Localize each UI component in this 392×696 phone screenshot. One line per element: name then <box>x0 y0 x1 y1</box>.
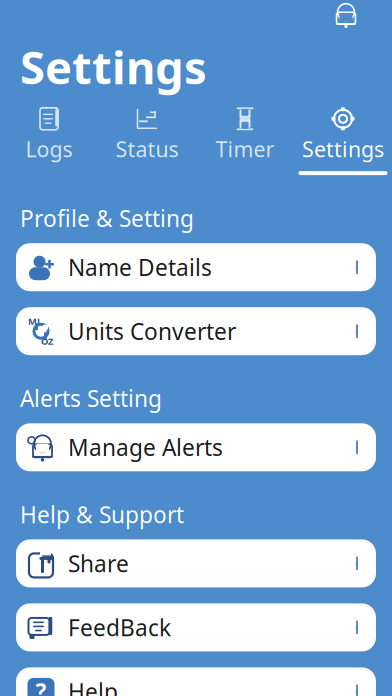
staticText: Timer <box>215 135 274 163</box>
button[interactable]: Settings <box>294 105 392 175</box>
button[interactable]: Manage Alerts <box>16 423 376 471</box>
staticText: ? <box>35 676 46 696</box>
button[interactable]: Timer <box>196 105 294 175</box>
button[interactable]: Notifications <box>326 0 366 34</box>
staticText: FeedBack <box>68 612 171 642</box>
staticText: Units Converter <box>68 316 236 346</box>
staticText: Help <box>68 676 118 696</box>
staticText: Logs <box>25 135 72 163</box>
staticText: Settings <box>20 37 207 97</box>
staticText: Settings <box>302 135 384 163</box>
staticText: Share <box>68 548 129 578</box>
button[interactable]: Logs <box>0 105 98 175</box>
staticText: Profile & Setting <box>20 203 194 233</box>
button[interactable]: Share <box>16 539 376 587</box>
button[interactable]: ? <box>16 667 376 696</box>
staticText: Manage Alerts <box>68 432 223 462</box>
staticText: Status <box>115 135 178 163</box>
button[interactable]: Name Details <box>16 243 376 291</box>
staticText: ML <box>28 315 42 327</box>
staticText: Alerts Setting <box>20 383 162 413</box>
staticText: Name Details <box>68 252 212 282</box>
staticText: OZ <box>41 335 53 347</box>
button[interactable]: Status <box>98 105 196 175</box>
button[interactable]: FeedBack <box>16 603 376 651</box>
button[interactable]: ML <box>16 307 376 355</box>
staticText: Help & Support <box>20 499 184 529</box>
